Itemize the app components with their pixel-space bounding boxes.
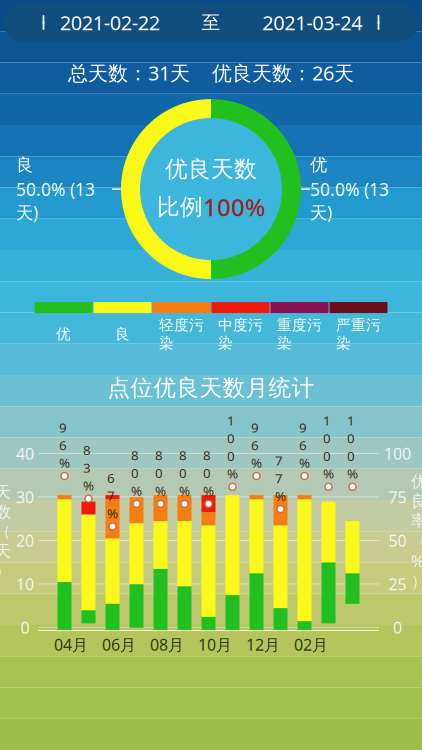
staticText: 100% [227, 411, 238, 482]
staticText: 96% [251, 418, 262, 471]
button[interactable]: 2021-03-24 [254, 5, 370, 40]
staticText: 75 [388, 486, 406, 508]
staticText: 83% [83, 441, 94, 494]
staticText: 02月 [294, 634, 328, 655]
staticText: 轻度污染 [159, 316, 204, 352]
staticText: 100% [203, 191, 265, 223]
staticText: 25 [388, 573, 406, 595]
staticText: 08月 [150, 634, 184, 655]
staticText: 50.0% (13天) [16, 178, 95, 224]
staticText: 2021-03-24 [262, 9, 362, 36]
staticText: 96% [299, 418, 310, 471]
staticText: 优 [56, 325, 71, 343]
button[interactable]: 2021-02-22 [52, 5, 168, 40]
staticText: 良 [115, 325, 130, 343]
staticText: 10 [16, 573, 34, 595]
staticText: 30 [16, 486, 34, 508]
staticText: 96% [59, 418, 70, 471]
staticText: 80% [179, 446, 190, 499]
staticText: 比例 [157, 193, 203, 221]
staticText: 04月 [54, 634, 88, 655]
staticText: 良 [16, 154, 33, 176]
staticText: 总天数：31天 [68, 59, 190, 86]
staticText: 10月 [198, 634, 232, 655]
staticText: 50 [388, 530, 406, 551]
staticText: 0 [393, 617, 402, 638]
staticText: 20 [16, 530, 34, 551]
staticText: 100% [323, 411, 334, 482]
staticText: 100 [384, 443, 411, 464]
staticText: 12月 [246, 634, 280, 655]
staticText: 77% [275, 451, 286, 505]
staticText: 重度污染 [277, 316, 322, 352]
staticText: 优良天数 [165, 155, 257, 183]
staticText: 40 [16, 443, 34, 464]
staticText: 06月 [102, 634, 136, 655]
button[interactable]: Next period [370, 11, 384, 33]
staticText: 严重污染 [336, 316, 381, 352]
staticText: 100% [347, 411, 358, 482]
staticText: 80% [203, 446, 214, 499]
staticText: 优良率（%） [411, 472, 422, 591]
staticText: 80% [155, 446, 166, 499]
staticText: 至 [201, 11, 220, 34]
staticText: 2021-02-22 [60, 9, 160, 36]
staticText: 50.0% (13天) [310, 178, 389, 224]
staticText: 优 [310, 154, 327, 176]
staticText: 点位优良天数月统计 [107, 374, 314, 402]
staticText: 中度污染 [218, 316, 263, 352]
staticText: 80% [131, 446, 142, 499]
staticText: 0 [20, 617, 29, 638]
staticText: 优良天数：26天 [212, 59, 354, 86]
staticText: 67% [107, 469, 118, 522]
staticText: 天数（天） [0, 482, 11, 581]
button[interactable]: Previous period [38, 11, 52, 33]
